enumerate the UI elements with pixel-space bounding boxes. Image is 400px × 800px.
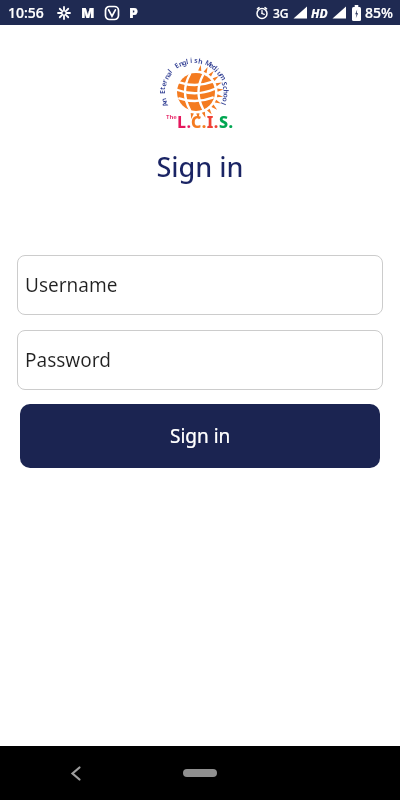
staticText: e: [159, 80, 170, 88]
staticText: m: [216, 71, 228, 82]
staticText: [200, 58, 205, 68]
staticText: [217, 78, 227, 84]
staticText: l: [166, 66, 175, 75]
button[interactable]: Password: [17, 330, 383, 390]
staticText: t: [158, 85, 168, 91]
staticText: Sign in: [170, 423, 231, 449]
button[interactable]: [64, 761, 88, 785]
staticText: u: [214, 69, 225, 79]
staticText: E: [173, 61, 181, 71]
staticText: l: [185, 57, 190, 67]
staticText: l: [217, 101, 228, 107]
staticText: The: [166, 113, 177, 121]
staticText: E: [158, 90, 168, 94]
staticText: c: [220, 85, 230, 91]
staticText: o: [219, 96, 230, 104]
staticText: Password: [25, 347, 111, 373]
staticText: M: [81, 3, 95, 22]
staticText: 3G: [273, 5, 289, 21]
button[interactable]: Username: [17, 255, 383, 315]
staticText: i: [190, 56, 193, 66]
staticText: i: [212, 66, 221, 75]
staticText: P: [129, 3, 138, 22]
staticText: Username: [25, 272, 118, 298]
staticText: [169, 63, 177, 72]
staticText: A: [160, 100, 171, 108]
staticText: L.C.I.S.: [177, 111, 234, 133]
button[interactable]: Sign in: [20, 404, 380, 468]
button[interactable]: [183, 769, 217, 777]
staticText: e: [207, 60, 216, 71]
staticText: S: [219, 81, 229, 87]
staticText: a: [164, 69, 175, 79]
staticText: n: [159, 96, 170, 104]
staticText: HD: [311, 5, 328, 21]
staticText: s: [194, 56, 198, 66]
staticText: h: [220, 89, 230, 95]
staticText: g: [181, 57, 188, 69]
staticText: 85%: [365, 3, 393, 22]
staticText: h: [197, 57, 204, 67]
staticText: 10:56: [8, 3, 44, 22]
staticText: n: [177, 58, 186, 70]
staticText: d: [209, 63, 220, 73]
staticText: n: [162, 72, 173, 82]
staticText: Sign in: [0, 148, 400, 185]
staticText: M: [203, 58, 214, 70]
staticText: r: [160, 77, 170, 85]
staticText: o: [220, 93, 231, 99]
